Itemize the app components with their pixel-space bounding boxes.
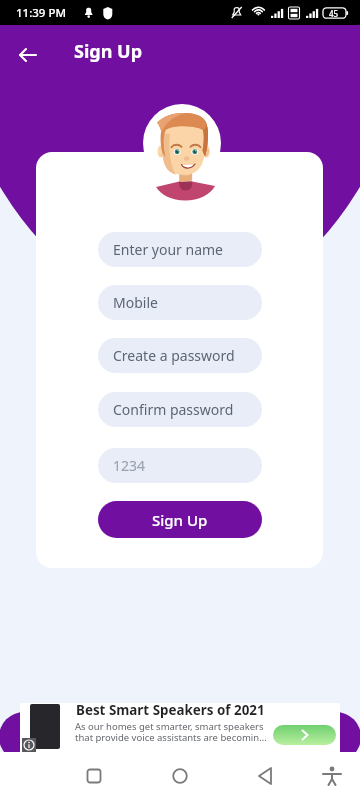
staticText: Mobile — [113, 293, 158, 312]
staticText: Sign Up — [152, 510, 208, 530]
staticText: Enter your name — [113, 240, 223, 259]
staticText: 45 — [329, 8, 339, 19]
button[interactable]: Best Smart Speakers of 2021 — [20, 703, 340, 752]
button[interactable]: Recents — [74, 752, 114, 800]
staticText: that provide voice assistants are becomi… — [75, 731, 267, 744]
staticText: Create a password — [113, 346, 235, 365]
staticText: 11:39 PM — [16, 5, 67, 21]
button[interactable]: Accessibility — [312, 752, 352, 800]
staticText: Confirm password — [113, 400, 234, 419]
staticText: Best Smart Speakers of 2021 — [76, 701, 265, 719]
button[interactable]: Open ad — [273, 725, 336, 745]
button[interactable]: Back — [246, 752, 286, 800]
button[interactable]: Back — [12, 39, 44, 71]
staticText: Sign Up — [74, 39, 143, 64]
button[interactable]: Confirm password — [98, 392, 262, 427]
button[interactable]: Sign Up — [98, 501, 262, 538]
staticText: As our homes get smarter, smart speakers — [75, 720, 264, 733]
staticText: 1234 — [113, 456, 146, 475]
button[interactable]: 1234 — [98, 448, 262, 483]
button[interactable]: Create a password — [98, 338, 262, 373]
button[interactable]: Home — [160, 752, 200, 800]
button[interactable]: Mobile — [98, 285, 262, 320]
button[interactable]: Enter your name — [98, 232, 262, 267]
